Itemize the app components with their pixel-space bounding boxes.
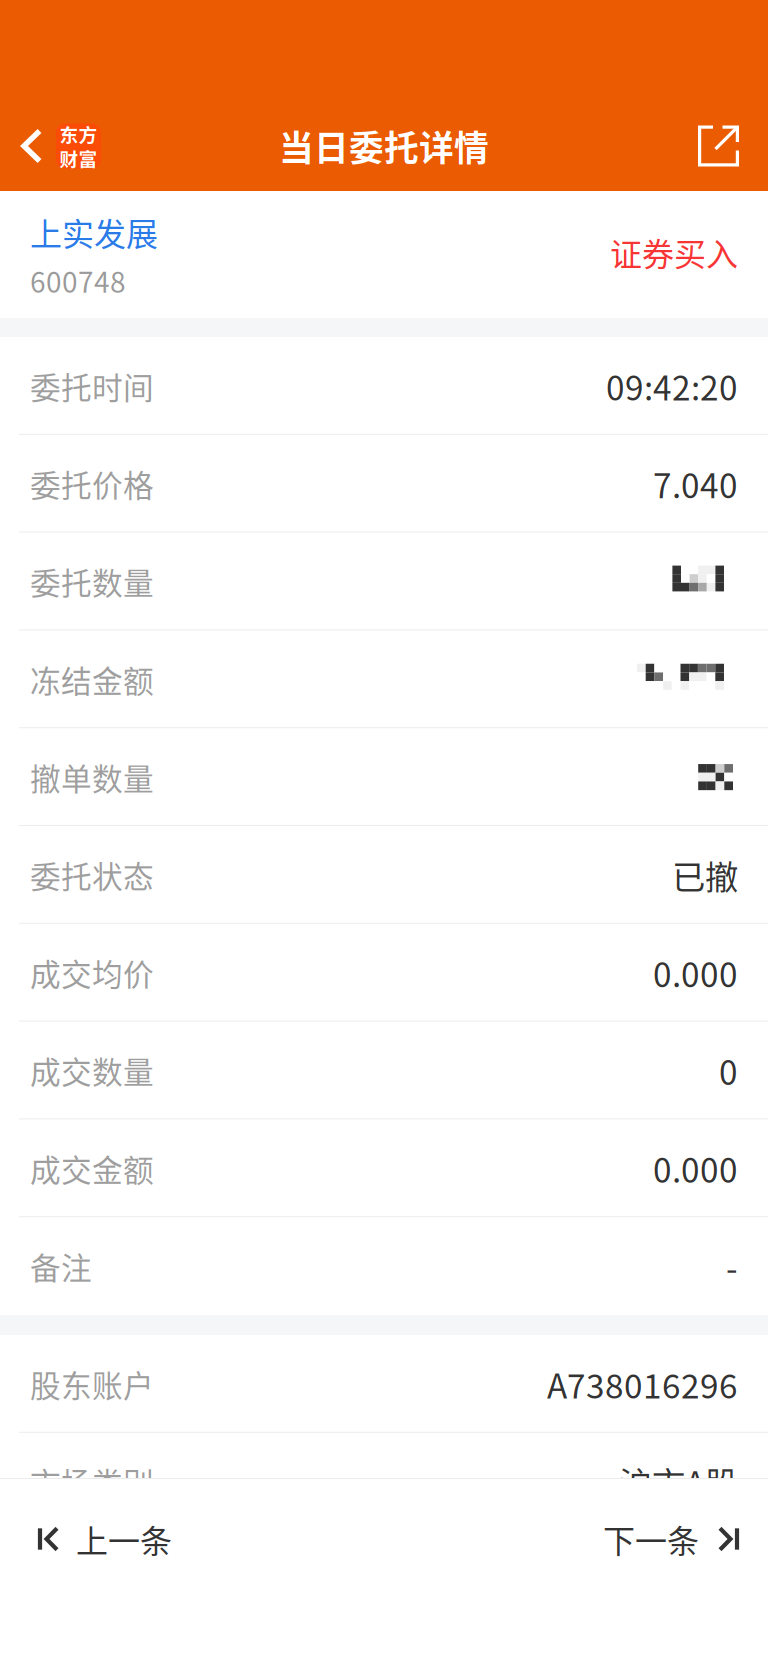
staticText: 0 xyxy=(719,1046,738,1095)
staticText: 委托状态 xyxy=(30,853,154,897)
button[interactable]: Share xyxy=(674,101,768,191)
staticText: 委托时间 xyxy=(30,364,154,408)
staticText: 成交数量 xyxy=(30,1048,154,1093)
staticText: 09:42:20 xyxy=(606,362,738,410)
staticText: 7.040 xyxy=(653,460,738,508)
staticText: 下一条 xyxy=(603,1516,699,1562)
button[interactable]: 上一条 xyxy=(0,1479,202,1599)
staticText: 600748 xyxy=(30,260,126,301)
staticText: 股东账户 xyxy=(30,1362,154,1406)
staticText: 已撤 xyxy=(672,851,738,899)
staticText: 委托价格 xyxy=(30,461,154,506)
staticText: 冻结金额 xyxy=(30,657,154,701)
staticText: 0.000 xyxy=(653,949,738,997)
staticText: 沪市A股 xyxy=(619,1458,738,1506)
staticText: 证券买入 xyxy=(610,229,738,275)
staticText: 东方 xyxy=(59,120,97,147)
staticText: A738016296 xyxy=(547,1360,738,1408)
staticText: - xyxy=(726,1242,738,1290)
button[interactable]: 下一条 xyxy=(573,1479,768,1599)
staticText: 当日委托详情 xyxy=(279,121,489,171)
staticText: 上一条 xyxy=(76,1516,172,1562)
staticText: 撤单数量 xyxy=(30,755,154,799)
staticText: 委托数量 xyxy=(30,559,154,604)
staticText: 0.000 xyxy=(653,1144,738,1192)
staticText: 备注 xyxy=(30,1244,92,1288)
staticText: 财富 xyxy=(59,144,97,171)
staticText: 成交均价 xyxy=(30,950,154,995)
staticText: 市场类别 xyxy=(30,1459,154,1504)
button[interactable]: Back xyxy=(0,101,113,191)
staticText: 成交金额 xyxy=(30,1146,154,1190)
staticText: 上实发展 xyxy=(30,209,158,255)
